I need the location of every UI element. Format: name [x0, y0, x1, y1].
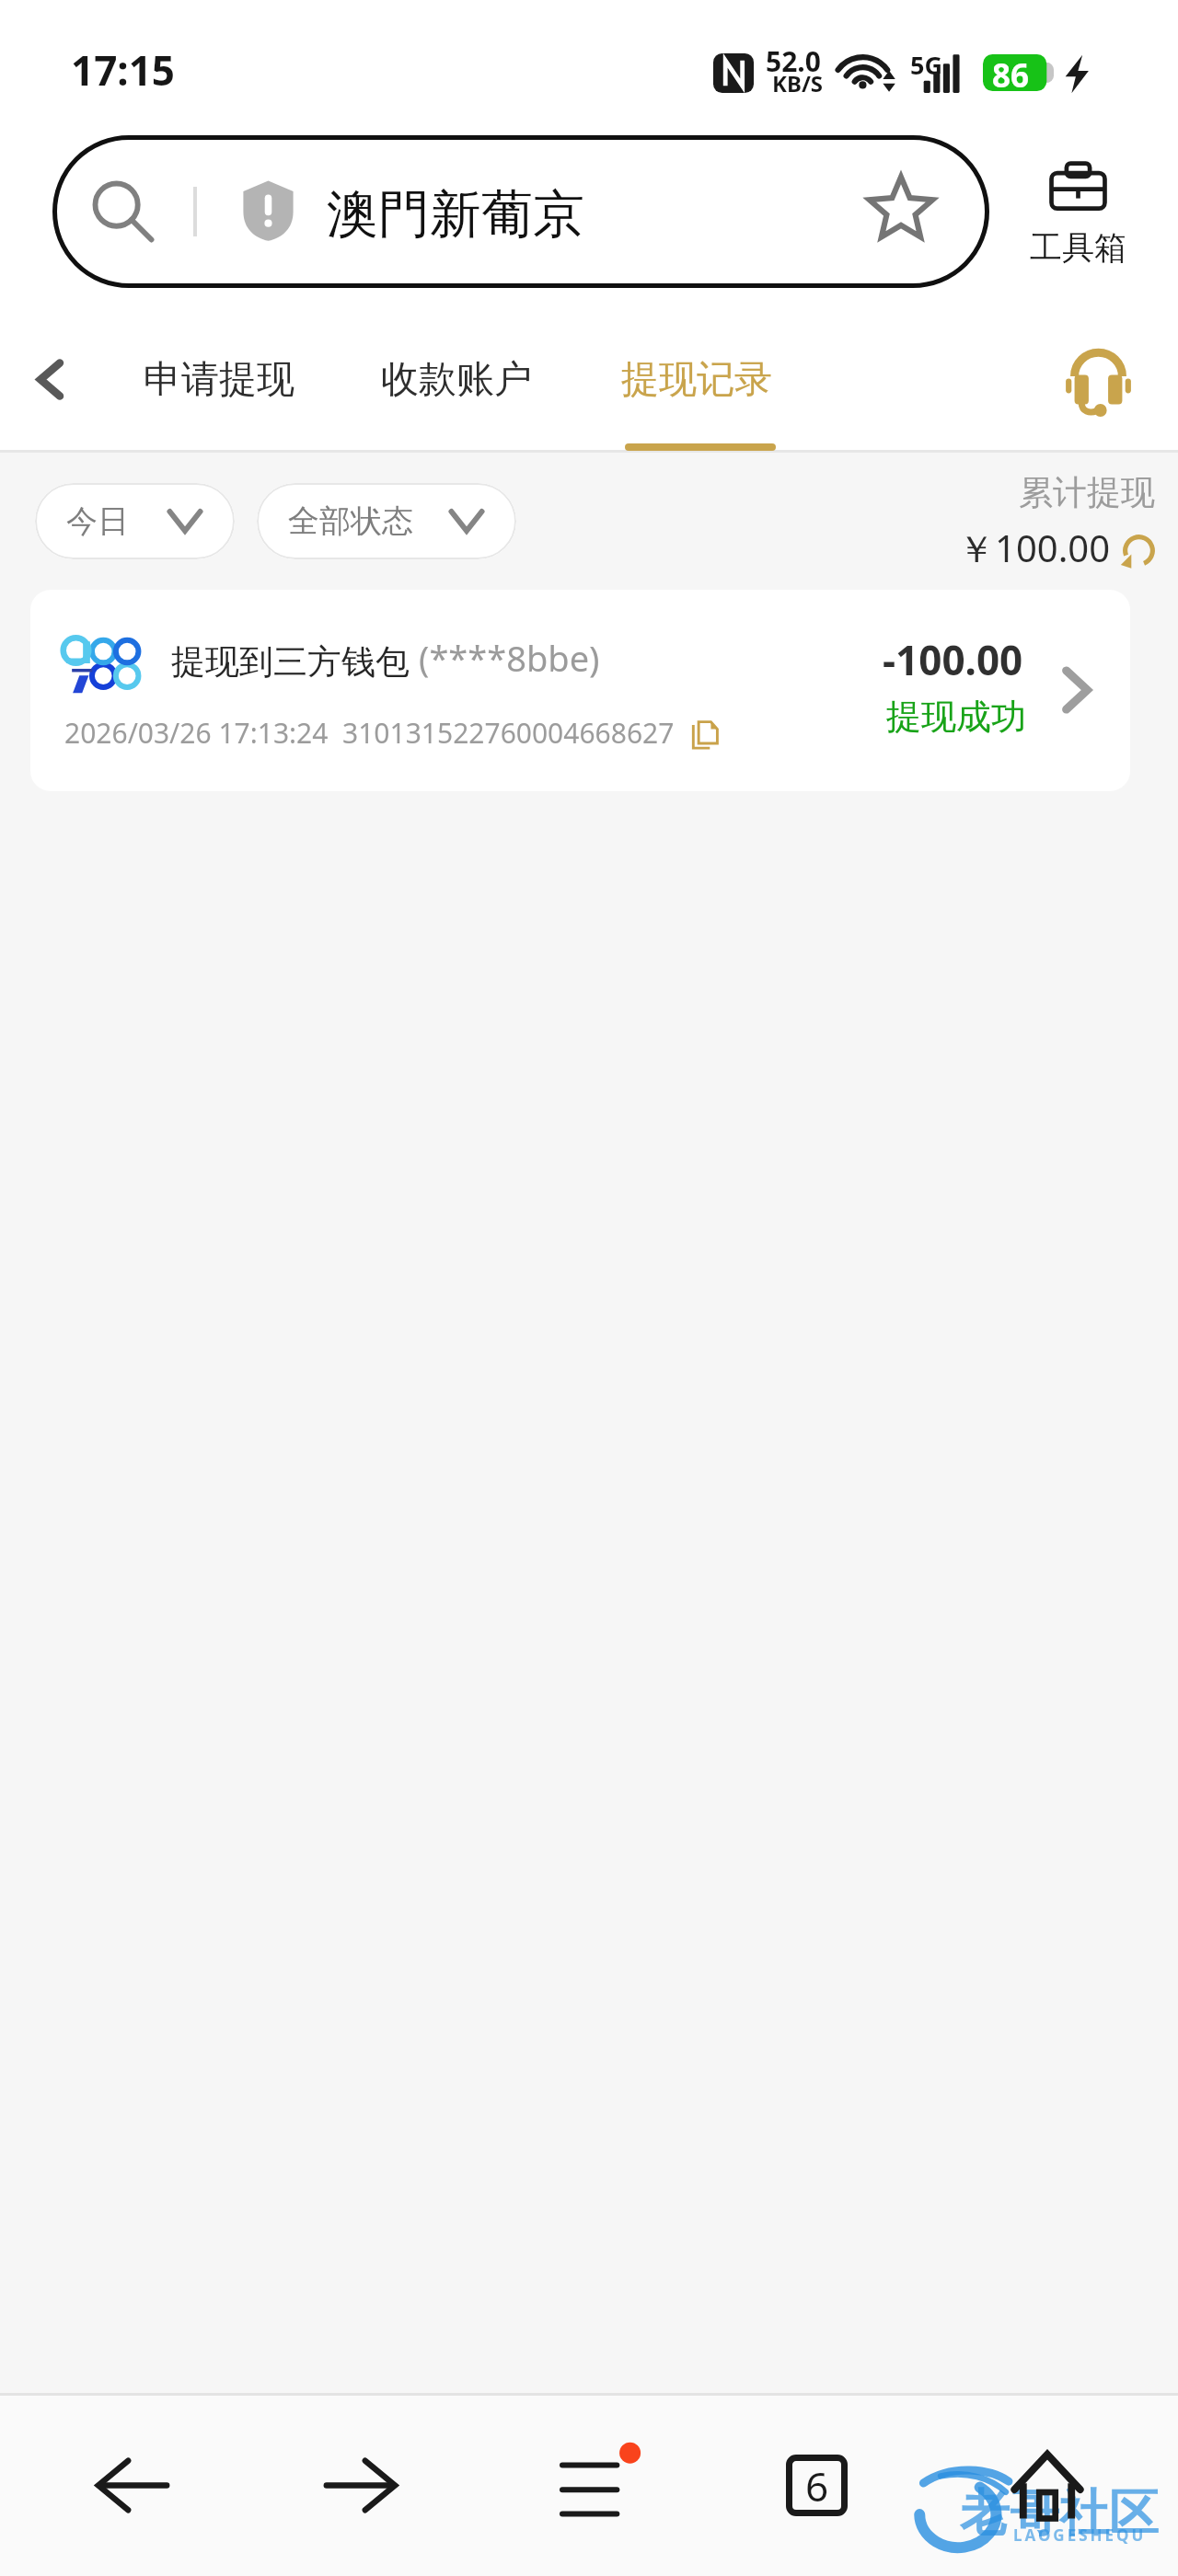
staticText: 累计提现 — [1019, 471, 1155, 514]
button[interactable]: Refresh — [1110, 521, 1169, 580]
staticText: 工具箱 — [1030, 227, 1126, 268]
staticText: 老哥社区 — [960, 2482, 1159, 2545]
button[interactable]: 申请提现 — [123, 322, 315, 414]
staticText: 52.0 — [766, 42, 821, 80]
staticText: 提现到三方钱包 — [171, 640, 410, 684]
button[interactable]: 全部状态 — [257, 483, 516, 559]
staticText: (****8bbe) — [419, 634, 600, 682]
staticText: 5G — [910, 48, 942, 82]
staticText: -100.00 — [883, 632, 1023, 687]
button[interactable]: Copy order number — [680, 710, 730, 760]
button[interactable]: Tabs 6 — [743, 2412, 890, 2558]
button[interactable]: Back — [59, 2412, 206, 2558]
button[interactable]: Bookmark — [857, 164, 945, 252]
staticText: 全部状态 — [288, 501, 413, 541]
staticText: ￥100.00 — [958, 523, 1111, 573]
staticText: 提现成功 — [886, 695, 1026, 739]
button[interactable]: 提现记录 — [601, 322, 792, 414]
staticText: 澳門新葡京 — [327, 182, 584, 247]
button[interactable]: 收款账户 — [361, 322, 552, 414]
staticText: 86 — [992, 53, 1030, 98]
button[interactable] — [52, 135, 989, 288]
button[interactable]: Menu — [531, 2412, 678, 2558]
button[interactable]: 今日 — [35, 483, 235, 559]
staticText: 收款账户 — [381, 356, 532, 404]
button[interactable]: Toolbox — [1024, 162, 1131, 268]
staticText: 今日 — [66, 501, 129, 541]
staticText: LAOGESHEQU — [1013, 2524, 1147, 2546]
button[interactable]: Forward — [287, 2412, 434, 2558]
button[interactable]: Customer service — [1047, 333, 1149, 429]
staticText: 提现记录 — [621, 356, 772, 404]
button[interactable] — [30, 590, 1130, 791]
staticText: 2026/03/26 17:13:24 31013152276000466862… — [64, 714, 675, 752]
staticText: KB/S — [772, 68, 824, 98]
button[interactable]: Home — [974, 2412, 1121, 2558]
button[interactable]: Back — [9, 324, 92, 434]
staticText: 申请提现 — [144, 356, 294, 404]
staticText: 17:15 — [71, 42, 176, 98]
staticText: 6 — [805, 2458, 829, 2513]
